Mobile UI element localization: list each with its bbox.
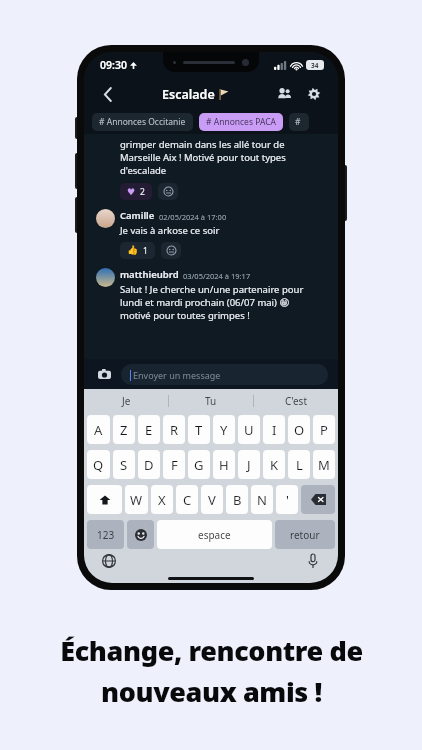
button[interactable]: Camille xyxy=(96,209,328,237)
staticText: Je vais à arkose ce soir xyxy=(120,224,220,237)
staticText: O xyxy=(294,421,305,439)
staticText: Envoyer un message xyxy=(133,369,221,381)
button[interactable]: V xyxy=(201,485,223,514)
staticText: Q xyxy=(93,456,104,474)
staticText: # Annonces PACA xyxy=(206,116,276,128)
staticText: Y xyxy=(220,421,228,439)
button[interactable]: retour xyxy=(275,520,335,549)
button[interactable]: C xyxy=(176,485,198,514)
staticText: L xyxy=(296,456,303,474)
staticText: Je xyxy=(122,394,131,408)
staticText: 03/05/2024 à 19:17 xyxy=(183,271,251,281)
button[interactable]: S xyxy=(113,450,135,479)
button[interactable]: Tu xyxy=(169,389,253,412)
button[interactable]: H xyxy=(213,450,235,479)
staticText: 👍 xyxy=(127,245,139,256)
staticText: E xyxy=(145,421,153,439)
button[interactable]: K xyxy=(263,450,285,479)
staticText: I xyxy=(272,421,277,439)
staticText: matthieubrd xyxy=(120,268,179,281)
button[interactable]: Add reaction xyxy=(158,183,178,200)
staticText: Tu xyxy=(205,394,217,408)
button[interactable]: L xyxy=(288,450,310,479)
button[interactable]: Emoji xyxy=(127,520,154,549)
staticText: Échange, rencontre de xyxy=(60,632,363,669)
button[interactable]: espace xyxy=(157,520,272,549)
button[interactable]: Q xyxy=(87,450,110,479)
button[interactable]: P xyxy=(313,415,335,444)
button[interactable]: W xyxy=(125,485,148,514)
button[interactable]: Settings xyxy=(302,82,326,106)
button[interactable]: F xyxy=(163,450,185,479)
button[interactable]: N xyxy=(251,485,273,514)
button[interactable]: T xyxy=(188,415,210,444)
staticText: 1 xyxy=(143,245,148,257)
staticText: ' xyxy=(286,491,289,509)
button[interactable]: Add reaction xyxy=(161,242,181,259)
button[interactable]: ' xyxy=(276,485,298,514)
staticText: N xyxy=(257,491,267,509)
staticText: H xyxy=(219,456,229,474)
button[interactable]: 123 xyxy=(87,520,124,549)
staticText: G xyxy=(194,456,204,474)
button[interactable]: Envoyer un message xyxy=(121,364,328,385)
staticText: T xyxy=(195,421,203,439)
staticText: 02/05/2024 à 17:00 xyxy=(159,212,227,222)
staticText: B xyxy=(233,491,242,509)
button[interactable]: M xyxy=(313,450,335,479)
button[interactable]: Shift xyxy=(87,485,122,514)
staticText: K xyxy=(270,456,279,474)
button[interactable]: ♥ xyxy=(120,183,152,200)
button[interactable]: Dictation xyxy=(302,550,324,572)
button[interactable]: R xyxy=(163,415,185,444)
staticText: Z xyxy=(120,421,128,439)
button[interactable]: X xyxy=(151,485,173,514)
button[interactable]: Back xyxy=(96,82,120,106)
button[interactable]: C'est xyxy=(254,389,338,412)
staticText: Salut ! Je cherche un/une partenaire pou… xyxy=(120,283,304,322)
staticText: D xyxy=(144,456,154,474)
button[interactable]: Backspace xyxy=(301,485,335,514)
button[interactable]: Y xyxy=(213,415,235,444)
button[interactable]: Members xyxy=(272,82,296,106)
staticText: X xyxy=(158,491,166,509)
staticText: 123 xyxy=(97,528,115,542)
button[interactable]: matthieubrd xyxy=(96,268,328,322)
button[interactable]: G xyxy=(188,450,210,479)
button[interactable]: Je xyxy=(84,389,168,412)
button[interactable]: I xyxy=(263,415,285,444)
staticText: Camille xyxy=(120,209,155,222)
staticText: nouveaux amis ! xyxy=(101,673,322,710)
staticText: espace xyxy=(198,528,231,542)
button[interactable]: U xyxy=(238,415,260,444)
staticText: P xyxy=(320,421,328,439)
staticText: F xyxy=(171,456,178,474)
staticText: J xyxy=(247,456,251,474)
button[interactable]: A xyxy=(87,415,110,444)
button[interactable]: Change keyboard xyxy=(98,550,120,572)
staticText: retour xyxy=(290,528,320,542)
button[interactable]: O xyxy=(288,415,310,444)
button[interactable]: 👍 xyxy=(120,242,155,259)
button[interactable]: Camera xyxy=(94,364,114,384)
button[interactable]: E xyxy=(138,415,160,444)
button[interactable]: Z xyxy=(113,415,135,444)
button[interactable]: # xyxy=(289,113,309,131)
staticText: 34 xyxy=(311,61,319,70)
staticText: C xyxy=(183,491,192,509)
staticText: R xyxy=(170,421,179,439)
staticText: ♥ xyxy=(127,187,136,197)
button[interactable]: J xyxy=(238,450,260,479)
staticText: C'est xyxy=(285,394,308,408)
button[interactable]: # Annonces PACA xyxy=(199,113,283,131)
staticText: U xyxy=(244,421,254,439)
staticText: A xyxy=(94,421,103,439)
button[interactable]: # Annonces Occitanie xyxy=(92,113,193,131)
button[interactable]: D xyxy=(138,450,160,479)
staticText: S xyxy=(120,456,128,474)
staticText: W xyxy=(130,491,143,509)
staticText: grimper demain dans les allé tour de Mar… xyxy=(120,138,286,177)
staticText: # xyxy=(295,116,303,128)
staticText: V xyxy=(208,491,216,509)
button[interactable]: B xyxy=(226,485,248,514)
